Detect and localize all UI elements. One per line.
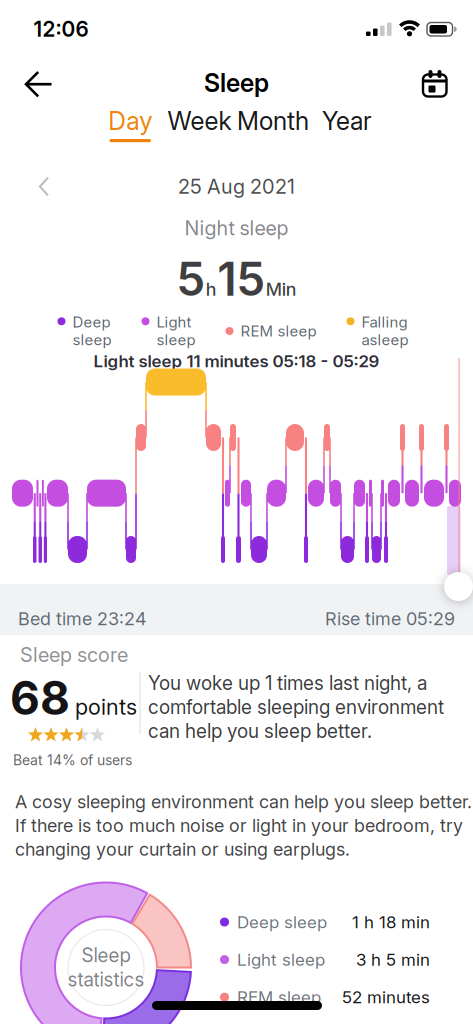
staticText: 3 h 5 min bbox=[356, 950, 430, 970]
button[interactable] bbox=[444, 572, 473, 601]
staticText: Sleep score bbox=[20, 643, 128, 667]
staticText: h bbox=[206, 279, 217, 300]
staticText: 68 bbox=[10, 671, 70, 725]
staticText: Year bbox=[322, 106, 372, 136]
staticText: Rise time 05:29 bbox=[325, 608, 455, 629]
staticText: Night sleep bbox=[184, 216, 288, 240]
staticText: sleep bbox=[72, 331, 111, 349]
button[interactable] bbox=[416, 66, 454, 102]
staticText: If there is too much noise or light in y… bbox=[15, 815, 463, 836]
staticText: Bed time 23:24 bbox=[18, 608, 147, 629]
staticText: 25 Aug 2021 bbox=[178, 175, 295, 198]
staticText: asleep bbox=[361, 331, 408, 349]
staticText: 1 h 18 min bbox=[352, 912, 430, 932]
button[interactable]: Week bbox=[167, 106, 231, 136]
staticText: Sleep bbox=[81, 944, 130, 966]
staticText: statistics bbox=[67, 968, 144, 991]
staticText: Beat 14% of users bbox=[13, 752, 132, 768]
button[interactable]: Month bbox=[237, 106, 309, 136]
staticText: points bbox=[75, 694, 137, 720]
staticText: Light sleep 11 minutes 05:18 - 05:29 bbox=[93, 351, 379, 371]
staticText: REM sleep bbox=[237, 987, 321, 1007]
staticText: Week bbox=[167, 106, 231, 136]
staticText: Month bbox=[237, 106, 309, 136]
staticText: Light bbox=[156, 313, 191, 331]
button[interactable] bbox=[34, 172, 62, 202]
staticText: 5 bbox=[176, 252, 205, 306]
staticText: can help you sleep better. bbox=[148, 720, 372, 742]
staticText: changing your curtain or using earplugs. bbox=[15, 838, 350, 860]
staticText: REM sleep bbox=[240, 322, 316, 340]
staticText: 12:06 bbox=[33, 17, 88, 41]
button[interactable]: Day bbox=[108, 106, 152, 136]
button[interactable] bbox=[18, 67, 54, 101]
button[interactable]: Year bbox=[322, 106, 372, 136]
staticText: Sleep bbox=[204, 68, 269, 98]
staticText: comfortable sleeping environment bbox=[148, 696, 444, 718]
staticText: Falling bbox=[361, 313, 407, 331]
staticText: Light sleep bbox=[237, 950, 325, 970]
staticText: 15 bbox=[217, 252, 265, 306]
staticText: A cosy sleeping environment can help you… bbox=[15, 791, 472, 812]
staticText: Deep sleep bbox=[237, 912, 327, 932]
staticText: You woke up 1 times last night, a bbox=[148, 672, 427, 694]
staticText: Deep bbox=[72, 313, 110, 331]
staticText: 52 minutes bbox=[342, 987, 430, 1007]
staticText: Day bbox=[108, 106, 152, 136]
staticText: Min bbox=[266, 279, 297, 300]
staticText: sleep bbox=[156, 331, 195, 349]
